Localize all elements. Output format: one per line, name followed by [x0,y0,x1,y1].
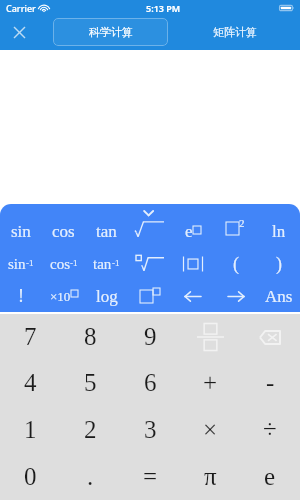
button[interactable]: Backspace [259,330,281,345]
button[interactable]: 1 [0,406,60,453]
staticText: ln [272,222,286,241]
staticText: 8 [84,323,97,351]
button[interactable]: ln [257,215,300,248]
staticText: sin [8,256,26,273]
other: Square root [135,210,164,237]
staticText: π [204,463,217,491]
button[interactable]: Square root [128,215,171,248]
staticText: + [203,369,218,397]
staticText: ( [233,254,239,274]
staticText: 9 [144,323,157,351]
button[interactable]: cos [42,215,85,248]
staticText: Ans [265,287,293,306]
staticText: Carrier [6,2,36,14]
button[interactable]: 8 [60,314,120,360]
button[interactable]: 4 [0,360,60,406]
button[interactable]: 7 [0,314,60,360]
staticText: 2 [239,217,245,229]
button[interactable]: ( [214,248,257,280]
staticText: ) [276,254,282,274]
button[interactable]: π [180,453,240,500]
staticText: 矩阵计算 [213,25,257,39]
staticText: log [96,287,118,306]
staticText: 5 [84,369,97,397]
button[interactable]: = [120,453,180,500]
other: nth root [136,255,164,271]
button[interactable]: Move right [214,280,257,312]
button[interactable]: 科学计算 [53,18,168,46]
staticText: 6 [144,369,157,397]
button[interactable]: sin [0,215,42,248]
staticText: tan [93,256,112,273]
staticText: 3 [144,416,157,444]
staticText: ! [18,286,24,306]
button[interactable]: ÷ [240,406,300,453]
button[interactable]: Move left [171,280,214,312]
button[interactable]: sin [0,248,42,280]
button[interactable]: log [85,280,128,312]
staticText: e [185,222,193,241]
button[interactable]: Backspace [240,314,300,360]
button[interactable]: . [60,453,120,500]
button[interactable]: 5 [60,360,120,406]
staticText: . [87,463,94,491]
button[interactable]: tan [85,248,128,280]
staticText: 2 [84,416,97,444]
staticText: -1 [26,258,34,268]
button[interactable]: 6 [120,360,180,406]
button[interactable]: ×10 [42,280,85,312]
other: Move right [226,290,246,303]
staticText: -1 [112,258,120,268]
button[interactable]: e [240,453,300,500]
button[interactable]: e [171,215,214,248]
staticText: 7 [24,323,37,351]
button[interactable] [171,248,214,280]
button[interactable]: × [180,406,240,453]
staticText: = [143,463,158,491]
staticText: 0 [24,463,37,491]
staticText: e [264,463,276,491]
staticText: 1 [24,416,37,444]
button[interactable]: ) [257,248,300,280]
staticText: cos [50,256,70,273]
button[interactable]: ! [0,280,42,312]
staticText: tan [96,222,117,241]
staticText: 5:13 PM [146,2,181,14]
button[interactable]: 3 [120,406,180,453]
button[interactable]: 矩阵计算 [168,18,300,46]
button[interactable]: + [180,360,240,406]
button[interactable]: Fraction [197,323,224,351]
staticText: 4 [24,369,37,397]
staticText: × [203,416,218,444]
staticText: - [266,369,275,397]
other: Move left [183,290,203,303]
staticText: ×10 [50,289,71,303]
staticText: 科学计算 [89,25,133,39]
button[interactable]: tan [85,215,128,248]
button[interactable]: cos [42,248,85,280]
button[interactable]: 0 [0,453,60,500]
button[interactable]: - [240,360,300,406]
staticText: sin [11,222,31,241]
button[interactable]: 9 [120,314,180,360]
button[interactable]: Ans [257,280,300,312]
staticText: -1 [70,258,78,268]
button[interactable]: nth root [128,248,171,280]
button[interactable] [128,280,171,312]
button[interactable]: Close [8,21,30,43]
button[interactable]: 2 [214,215,257,248]
staticText: cos [52,222,75,241]
button[interactable]: 2 [60,406,120,453]
button[interactable]: Fraction [180,314,240,360]
staticText: ÷ [263,416,277,444]
